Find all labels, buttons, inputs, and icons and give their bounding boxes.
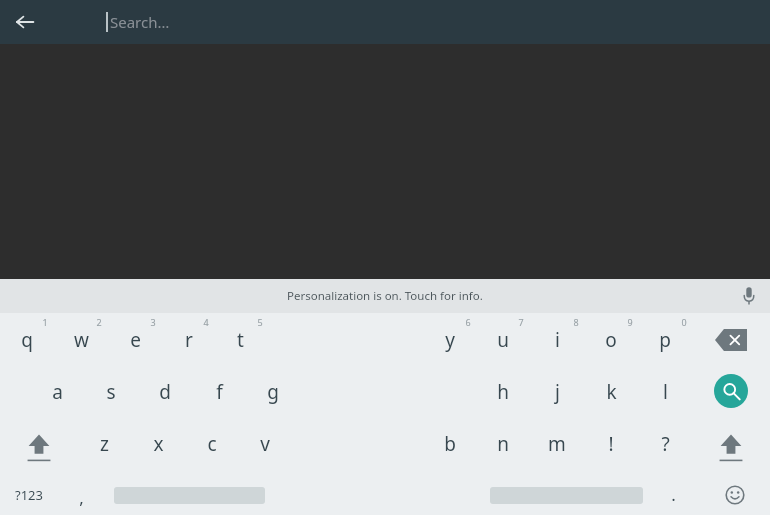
button[interactable]: f xyxy=(193,369,245,415)
button[interactable]: Voice input xyxy=(729,280,769,312)
staticText: y xyxy=(445,327,455,353)
button[interactable]: z xyxy=(78,421,130,467)
staticText: m xyxy=(548,431,566,457)
button[interactable]: p xyxy=(639,317,691,363)
staticText: ? xyxy=(661,431,670,457)
button[interactable]: Personalization is on. Touch for info. xyxy=(0,279,770,313)
button[interactable]: ?123 xyxy=(1,475,57,515)
staticText: Search… xyxy=(110,12,170,32)
button[interactable]: l xyxy=(639,369,691,415)
button[interactable]: o xyxy=(585,317,637,363)
staticText: h xyxy=(497,379,509,405)
button[interactable]: s xyxy=(85,369,137,415)
staticText: 4 xyxy=(203,316,209,328)
staticText: 9 xyxy=(627,316,633,328)
staticText: 2 xyxy=(96,316,102,328)
button[interactable]: w xyxy=(55,317,107,363)
button[interactable]: a xyxy=(31,369,83,415)
staticText: , xyxy=(79,486,84,509)
staticText: p xyxy=(659,327,671,353)
staticText: c xyxy=(207,431,217,457)
button[interactable]: h xyxy=(477,369,529,415)
button[interactable]: Search xyxy=(705,365,757,417)
button[interactable]: ! xyxy=(585,421,637,467)
staticText: u xyxy=(497,327,509,353)
button[interactable]: . xyxy=(651,475,695,513)
button[interactable]: i xyxy=(531,317,583,363)
button[interactable]: c xyxy=(186,421,238,467)
staticText: 0 xyxy=(681,316,687,328)
staticText: f xyxy=(216,379,223,405)
staticText: s xyxy=(106,379,116,405)
button[interactable]: n xyxy=(477,421,529,467)
staticText: v xyxy=(260,431,270,457)
staticText: Personalization is on. Touch for info. xyxy=(287,288,483,304)
staticText: ?123 xyxy=(15,486,43,504)
staticText: 8 xyxy=(573,316,579,328)
button[interactable]: Search… xyxy=(100,4,700,40)
button[interactable]: ? xyxy=(639,421,691,467)
staticText: i xyxy=(555,327,560,353)
button[interactable]: e xyxy=(109,317,161,363)
staticText: 6 xyxy=(465,316,471,328)
staticText: a xyxy=(52,379,63,405)
staticText: 1 xyxy=(42,316,48,328)
button[interactable]: g xyxy=(247,369,299,415)
button[interactable]: , xyxy=(59,478,103,515)
staticText: 7 xyxy=(518,316,524,328)
staticText: d xyxy=(159,379,171,405)
staticText: g xyxy=(267,379,279,405)
staticText: w xyxy=(74,327,89,353)
button[interactable]: r xyxy=(163,317,215,363)
staticText: q xyxy=(21,327,33,353)
staticText: l xyxy=(663,379,668,405)
button[interactable]: y xyxy=(424,317,476,363)
button[interactable]: Backspace xyxy=(705,318,757,362)
staticText: n xyxy=(497,431,509,457)
button[interactable]: t xyxy=(214,317,266,363)
staticText: t xyxy=(237,327,244,353)
staticText: x xyxy=(153,431,164,457)
staticText: b xyxy=(444,431,456,457)
button[interactable]: Emoji xyxy=(711,475,759,515)
staticText: 5 xyxy=(257,316,263,328)
staticText: ! xyxy=(608,431,614,457)
button[interactable]: u xyxy=(477,317,529,363)
staticText: o xyxy=(605,327,617,353)
staticText: . xyxy=(671,483,676,506)
button[interactable]: d xyxy=(139,369,191,415)
button[interactable]: Back xyxy=(4,2,46,42)
staticText: e xyxy=(130,327,141,353)
button[interactable]: Shift xyxy=(13,422,65,470)
staticText: z xyxy=(100,431,109,457)
button[interactable]: k xyxy=(585,369,637,415)
staticText: k xyxy=(606,379,617,405)
button[interactable]: x xyxy=(132,421,184,467)
button[interactable]: b xyxy=(424,421,476,467)
staticText: 3 xyxy=(150,316,156,328)
button[interactable]: q xyxy=(1,317,53,363)
button[interactable]: Shift xyxy=(705,422,757,470)
button[interactable]: m xyxy=(531,421,583,467)
staticText: j xyxy=(555,379,560,405)
button[interactable]: v xyxy=(239,421,291,467)
button[interactable]: j xyxy=(531,369,583,415)
staticText: r xyxy=(185,327,193,353)
